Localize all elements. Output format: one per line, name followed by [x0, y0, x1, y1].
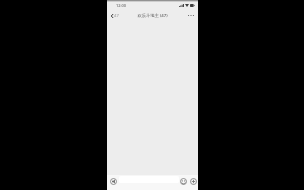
staticText: 12:00	[116, 3, 126, 8]
button[interactable]: Emoji	[179, 176, 189, 187]
staticText: 47	[114, 13, 119, 19]
button[interactable]: Hold to talk	[107, 176, 120, 187]
button[interactable]: More functions	[189, 176, 199, 187]
button[interactable]: More options	[184, 9, 198, 22]
button[interactable]: Back	[107, 9, 122, 22]
staticText: 欢乐斗地主 (47)	[137, 12, 168, 18]
